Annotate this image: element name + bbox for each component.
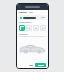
button[interactable] (28, 64, 34, 67)
button[interactable]: Option 2 (26, 25, 32, 31)
button[interactable]: Option 1 (19, 25, 25, 31)
button[interactable] (19, 15, 46, 20)
button[interactable]: Back (18, 5, 22, 9)
button[interactable] (35, 63, 46, 67)
button[interactable]: Option 3 (33, 25, 39, 31)
button[interactable]: Option 4 (40, 25, 46, 31)
